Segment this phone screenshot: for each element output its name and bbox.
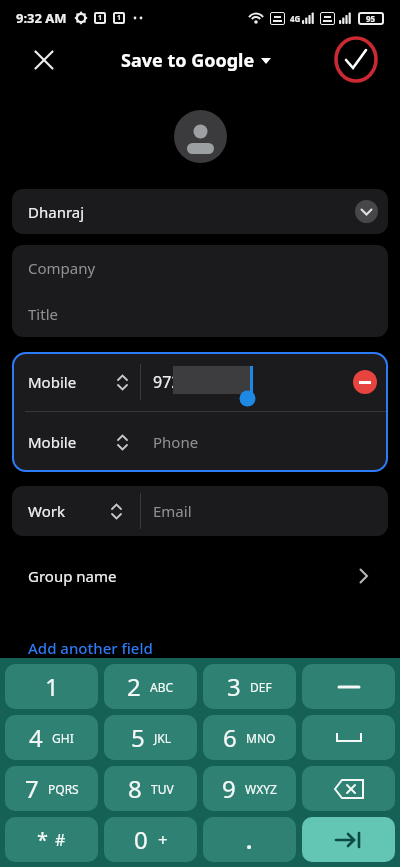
staticText: Save to Google — [121, 48, 255, 73]
button[interactable]: Mobile — [12, 412, 388, 472]
staticText: ABC — [150, 679, 174, 695]
staticText: MNO — [246, 730, 276, 746]
staticText: GHI — [52, 730, 74, 746]
button[interactable]: 7 — [5, 766, 98, 811]
button[interactable]: Mobile — [12, 352, 388, 411]
button[interactable]: Group name — [12, 552, 388, 600]
staticText: Company — [28, 258, 96, 278]
staticText: TUV — [151, 781, 174, 797]
staticText: # — [55, 829, 66, 851]
staticText: Work — [28, 501, 65, 521]
button[interactable]: 3 — [203, 664, 296, 709]
button[interactable]: * — [5, 817, 98, 862]
button[interactable] — [355, 200, 378, 223]
staticText: * — [37, 826, 49, 853]
button[interactable]: 5 — [104, 715, 197, 760]
button[interactable]: Save to Google — [121, 48, 271, 73]
staticText: 4G — [290, 13, 301, 24]
staticText: 0 — [134, 823, 148, 856]
button[interactable] — [30, 46, 58, 74]
button[interactable] — [334, 38, 378, 82]
staticText: Title — [28, 304, 58, 324]
staticText: 972 — [153, 371, 181, 393]
button[interactable]: 4 — [5, 715, 98, 760]
staticText: 3 — [227, 670, 241, 703]
button[interactable]: Add another field — [28, 638, 153, 658]
staticText: DEF — [250, 679, 272, 695]
staticText: 1 — [117, 13, 122, 23]
staticText: Group name — [28, 566, 117, 586]
staticText: PQRS — [48, 781, 79, 797]
staticText: 95 — [366, 13, 376, 24]
staticText: 8 — [128, 772, 142, 805]
button[interactable]: 0 — [104, 817, 197, 862]
staticText: Email — [153, 501, 192, 521]
staticText: 5 — [131, 721, 145, 754]
staticText: . — [246, 825, 253, 855]
button[interactable] — [302, 715, 395, 760]
staticText: 9 — [222, 772, 236, 805]
staticText: 4 — [29, 721, 43, 754]
staticText: 6 — [223, 721, 237, 754]
button[interactable] — [302, 766, 395, 811]
button[interactable]: 8 — [104, 766, 197, 811]
staticText: Dhanraj — [28, 202, 85, 222]
staticText: 2 — [127, 670, 141, 703]
button[interactable]: . — [203, 817, 296, 862]
staticText: + — [158, 828, 168, 851]
staticText: 1 — [98, 13, 103, 23]
button[interactable]: 6 — [203, 715, 296, 760]
staticText: 7 — [25, 772, 39, 805]
button[interactable] — [302, 817, 395, 862]
button[interactable]: 9 — [203, 766, 296, 811]
button[interactable]: Title — [12, 291, 388, 337]
staticText: Phone — [153, 432, 199, 452]
button[interactable] — [353, 370, 377, 394]
staticText: Mobile — [28, 432, 77, 452]
button[interactable]: 2 — [104, 664, 197, 709]
staticText: WXYZ — [245, 781, 277, 797]
staticText: Mobile — [28, 372, 77, 392]
staticText: 1 — [45, 670, 59, 703]
staticText: JKL — [154, 730, 171, 746]
button[interactable]: Dhanraj — [12, 189, 388, 234]
staticText: 9:32 AM — [16, 9, 67, 27]
button[interactable] — [302, 664, 395, 709]
button[interactable]: Work — [12, 486, 388, 536]
button[interactable]: 1 — [5, 664, 98, 709]
button[interactable]: Company — [12, 245, 388, 291]
